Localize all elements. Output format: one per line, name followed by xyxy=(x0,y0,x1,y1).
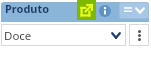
button[interactable]: Opcoes de filtro xyxy=(119,2,149,19)
button[interactable]: Informacao xyxy=(99,5,111,17)
button[interactable]: Doce xyxy=(1,24,126,46)
staticText: Doce xyxy=(4,28,32,44)
button[interactable]: Mais opcoes xyxy=(129,24,149,46)
button[interactable]: Abrir produto xyxy=(77,0,96,20)
button[interactable]: Produto xyxy=(5,1,50,16)
